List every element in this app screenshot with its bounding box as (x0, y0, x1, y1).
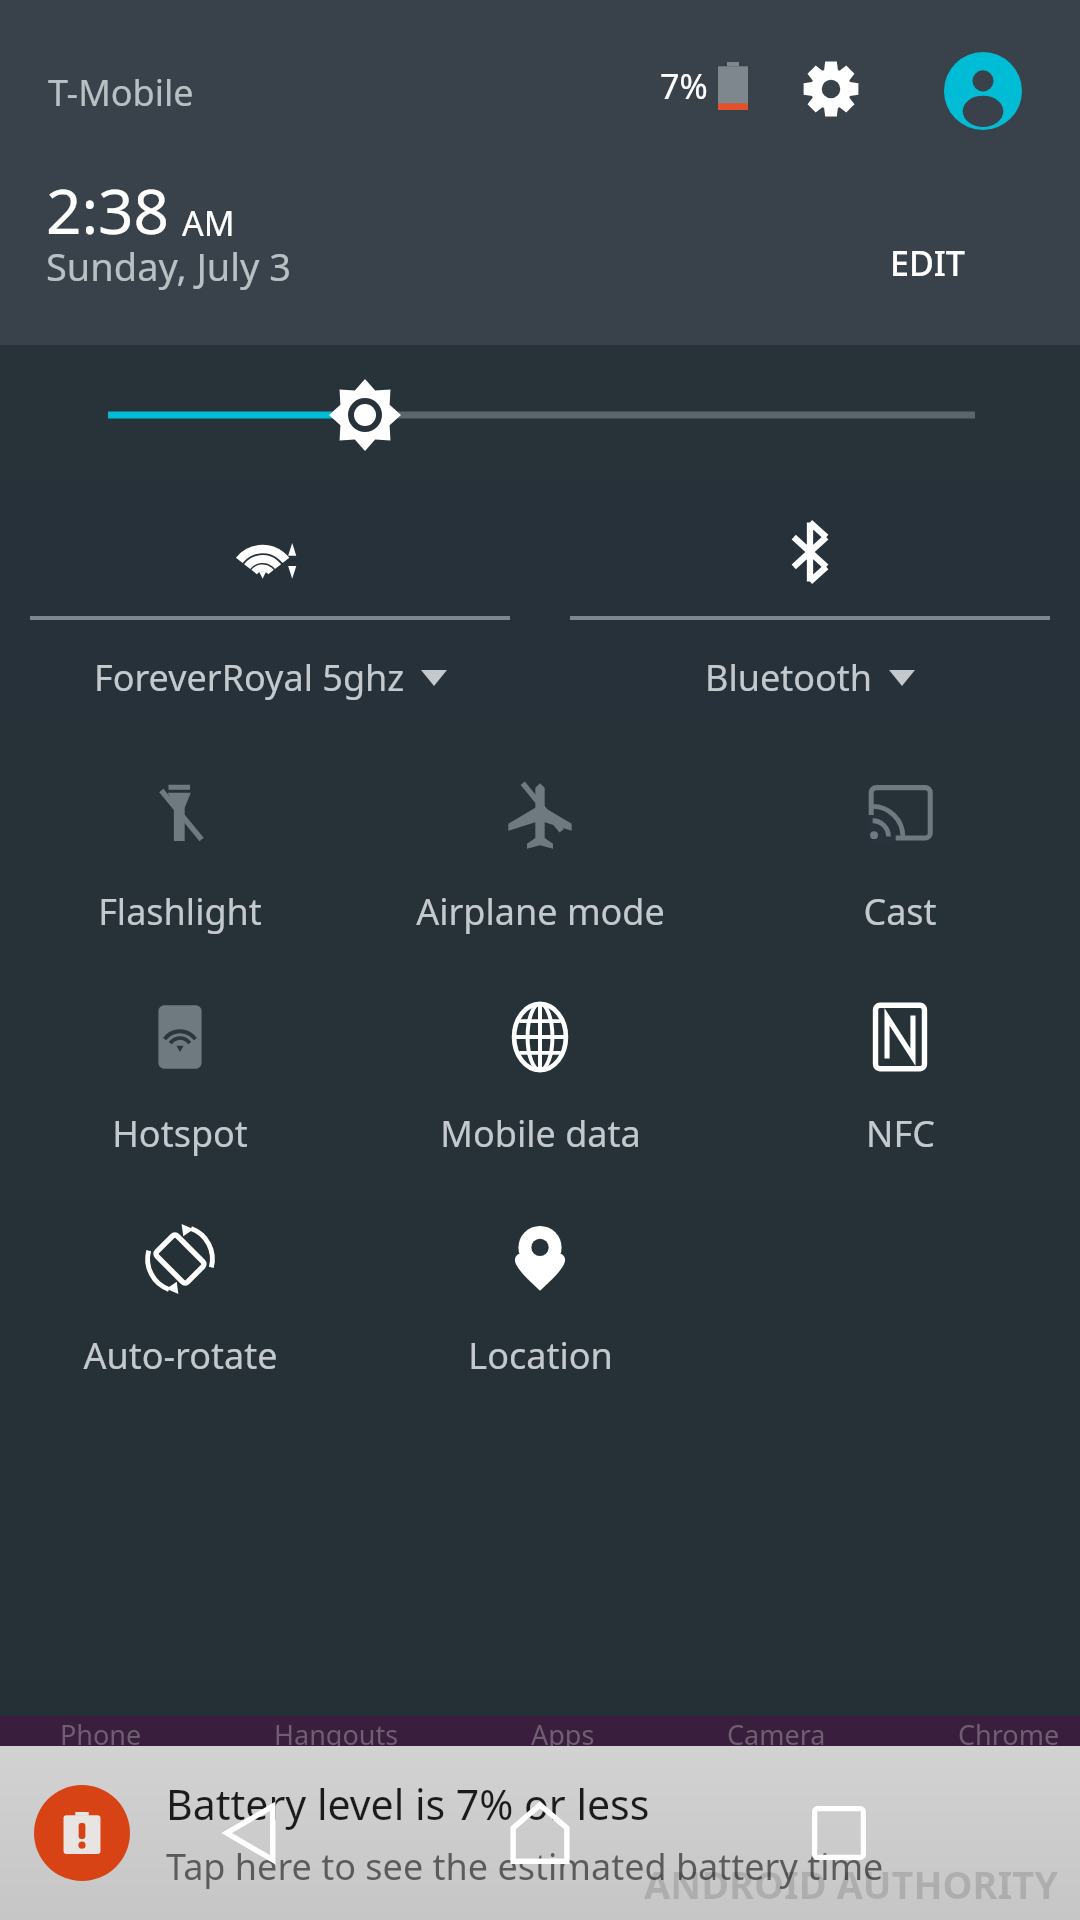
staticText: Tap here to see the estimated battery ti… (166, 1842, 884, 1891)
button[interactable]: User account (940, 48, 1026, 134)
staticText: ForeverRoyal 5ghz (94, 653, 405, 702)
staticText: EDIT (890, 240, 965, 286)
button[interactable]: Recent apps (784, 1746, 894, 1920)
staticText: Hotspot (112, 1109, 248, 1158)
button[interactable]: Home (485, 1746, 595, 1920)
staticText: Apps (531, 1716, 595, 1746)
staticText: Camera (727, 1716, 826, 1746)
staticText: Chrome (958, 1716, 1060, 1746)
button[interactable]: Brightness (0, 345, 1080, 485)
button[interactable]: Flashlight (0, 743, 360, 965)
button[interactable]: Location (360, 1187, 720, 1409)
staticText: T-Mobile (48, 68, 194, 117)
button[interactable]: Back (196, 1746, 306, 1920)
staticText: Auto-rotate (83, 1331, 278, 1380)
staticText: Location (468, 1331, 613, 1380)
staticText: NFC (866, 1109, 935, 1158)
button[interactable]: EDIT (870, 228, 985, 298)
staticText: Airplane mode (416, 887, 665, 936)
button[interactable]: ForeverRoyal 5ghz (0, 485, 540, 715)
button[interactable]: Auto-rotate (0, 1187, 360, 1409)
button[interactable]: Hotspot (0, 965, 360, 1187)
button[interactable]: Settings (790, 48, 872, 130)
staticText: Hangouts (274, 1716, 399, 1746)
button[interactable]: Bluetooth (540, 485, 1080, 715)
staticText: AM (182, 200, 235, 246)
staticText: Cast (863, 887, 937, 936)
staticText: Flashlight (98, 887, 262, 936)
staticText: ANDROID AUTHORITY (644, 1858, 1058, 1910)
staticText: Phone (60, 1716, 142, 1746)
staticText: Battery level is 7% or less (166, 1776, 650, 1832)
staticText: 2:38 (46, 168, 170, 252)
staticText: 7% (660, 63, 708, 109)
button[interactable]: Cast (720, 743, 1080, 965)
button[interactable]: Battery level is 7% or less (0, 1746, 1080, 1920)
staticText: Sunday, July 3 (46, 240, 292, 292)
staticText: Mobile data (440, 1109, 641, 1158)
button[interactable]: Mobile data (360, 965, 720, 1187)
button[interactable]: NFC (720, 965, 1080, 1187)
button[interactable]: Airplane mode (360, 743, 720, 965)
staticText: Bluetooth (705, 653, 873, 702)
